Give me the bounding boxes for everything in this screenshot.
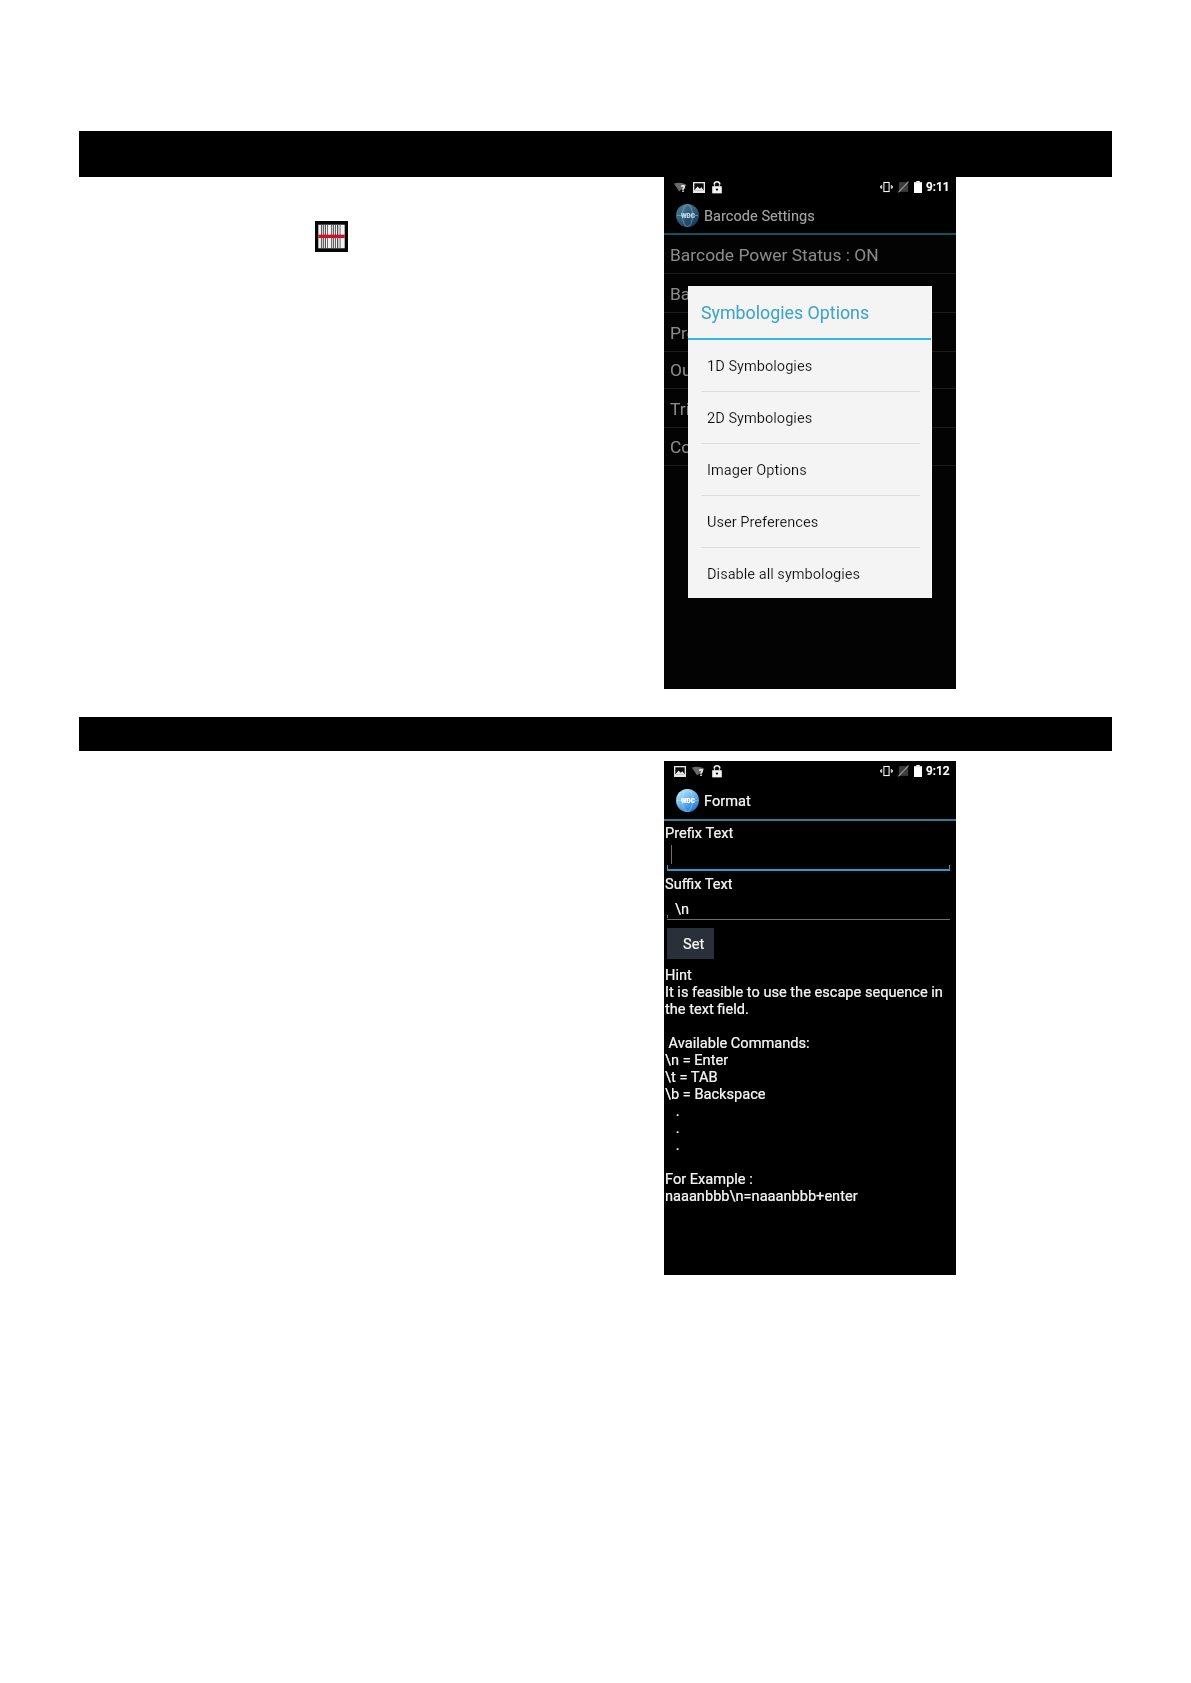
staticText: Available Commands: <box>665 1034 810 1051</box>
button[interactable]: Set <box>667 928 714 959</box>
button[interactable]: Prefix & Suffix Settings <box>664 313 956 352</box>
button[interactable]: Disable all symbologies <box>688 548 932 598</box>
staticText: \b = Backspace <box>665 1085 766 1102</box>
staticText: 9:12 <box>926 764 950 778</box>
button[interactable]: Trigger Settings <box>664 389 956 428</box>
button[interactable]: User Preferences <box>688 496 932 548</box>
button[interactable]: Imager Options <box>688 444 932 496</box>
button[interactable]: Barcode Scan Settings <box>664 274 956 313</box>
staticText: WDC <box>681 212 695 220</box>
staticText: 2D Symbologies <box>707 409 813 426</box>
staticText: . <box>665 1136 680 1153</box>
staticText: WDC <box>681 797 695 805</box>
button[interactable]: Barcode Power Status : ON <box>664 235 956 274</box>
staticText: Disable all symbologies <box>707 565 860 582</box>
button[interactable]: Continuous Settings <box>664 428 956 466</box>
button[interactable]: 2D Symbologies <box>688 392 932 444</box>
staticText: Output Settings <box>670 360 791 380</box>
staticText: For Example : <box>665 1170 753 1187</box>
staticText: 1D Symbologies <box>707 357 813 374</box>
staticText: . <box>665 1102 680 1119</box>
button[interactable]: Prefix text field <box>667 842 950 871</box>
staticText: Trigger Settings <box>670 399 793 419</box>
staticText: Continuous Settings <box>670 437 827 457</box>
staticText: Prefix Text <box>665 824 734 841</box>
staticText: Set <box>683 935 705 952</box>
staticText: \n <box>675 900 690 917</box>
staticText: Hint <box>665 966 692 983</box>
staticText: \n = Enter <box>665 1051 729 1068</box>
staticText: Imager Options <box>707 461 807 478</box>
button[interactable]: 1D Symbologies <box>688 340 932 392</box>
staticText: Prefix & Suffix Settings <box>670 323 845 343</box>
staticText: . <box>665 1119 680 1136</box>
staticText: ? <box>699 768 704 778</box>
staticText: Barcode Scan Settings <box>670 284 845 304</box>
staticText: Format <box>704 792 751 809</box>
staticText: \t = TAB <box>665 1068 718 1085</box>
staticText: It is feasible to use the escape sequenc… <box>665 983 943 1000</box>
button[interactable]: Suffix text field <box>667 894 950 920</box>
button[interactable]: Barcode scanner <box>315 221 348 252</box>
staticText: Symbologies Options <box>701 302 870 323</box>
staticText: Barcode Settings <box>704 207 815 224</box>
button[interactable]: Output Settings <box>664 351 956 389</box>
staticText: User Preferences <box>707 513 819 530</box>
staticText: Barcode Power Status : ON <box>670 245 879 265</box>
staticText: 9:11 <box>926 180 950 194</box>
staticText: the text field. <box>665 1000 749 1017</box>
staticText: Suffix Text <box>665 875 733 892</box>
staticText: ? <box>681 184 686 194</box>
staticText: naaanbbb\n=naaanbbb+enter <box>665 1187 858 1204</box>
